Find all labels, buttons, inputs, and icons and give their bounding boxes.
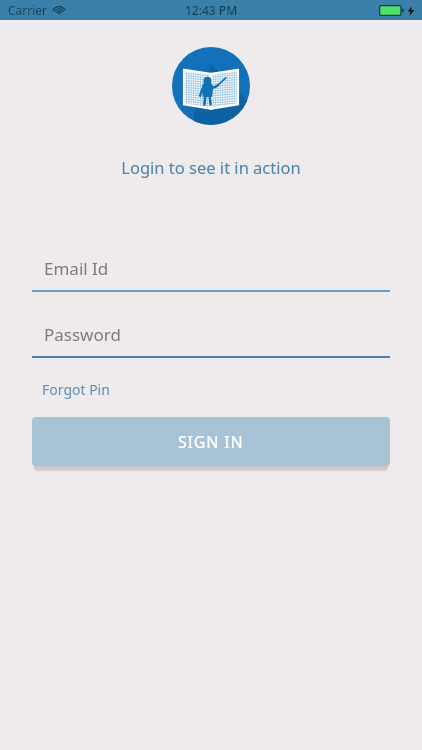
staticText: SIGN IN (178, 431, 244, 453)
staticText: Carrier (8, 2, 48, 18)
button[interactable]: Password (32, 312, 390, 358)
staticText: Email Id (44, 257, 109, 280)
staticText: Login to see it in action (0, 156, 422, 178)
staticText: Password (44, 323, 121, 346)
button[interactable]: SIGN IN (32, 417, 390, 466)
staticText: 12:43 PM (185, 2, 238, 18)
button[interactable]: Forgot Pin (32, 376, 120, 403)
button[interactable]: Email Id (32, 246, 390, 292)
staticText: Forgot Pin (42, 380, 110, 399)
